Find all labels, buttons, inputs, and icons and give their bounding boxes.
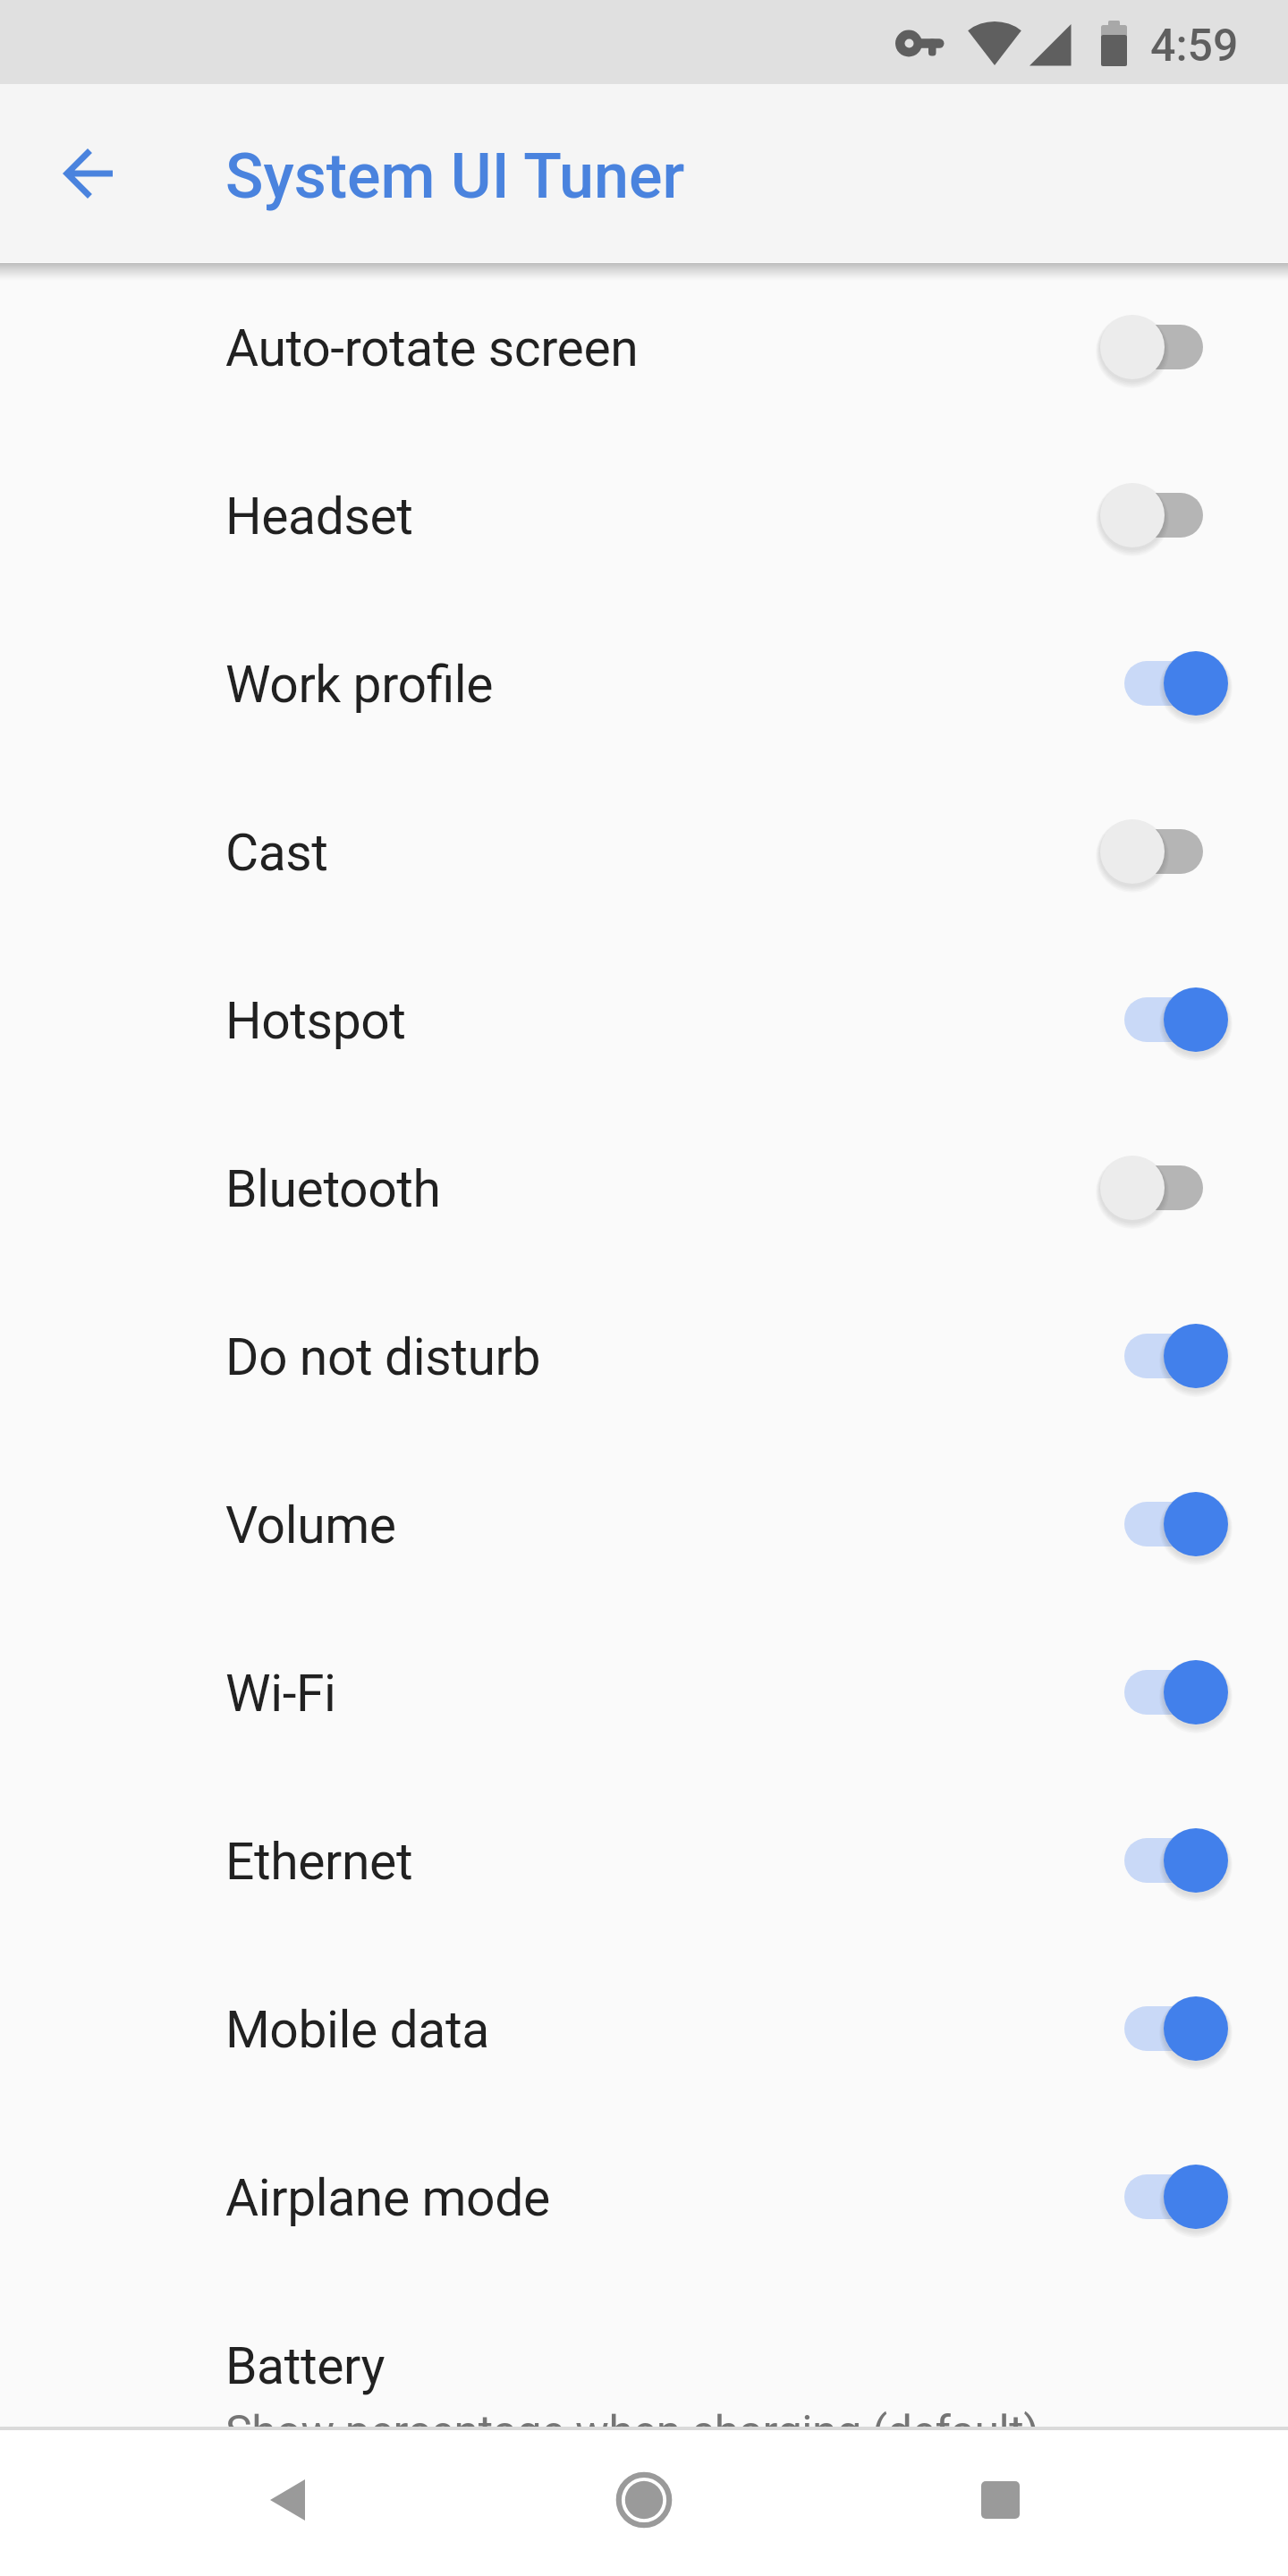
staticText: Ethernet <box>225 1832 413 1892</box>
button[interactable]: Toggle off <box>1118 265 1288 433</box>
button[interactable]: Toggle off <box>1118 1106 1288 1274</box>
button[interactable]: Toggle on <box>1118 1610 1288 1778</box>
button[interactable]: Battery <box>0 2283 1288 2427</box>
staticText: Volume <box>225 1496 396 1555</box>
button[interactable]: Back <box>50 136 125 211</box>
button[interactable]: Toggle on <box>1118 1778 1288 1946</box>
button[interactable]: Mobile data <box>0 1946 1288 2114</box>
button[interactable]: Toggle off <box>1118 769 1288 937</box>
button[interactable]: Airplane mode <box>0 2114 1288 2283</box>
button[interactable]: Toggle off <box>1118 433 1288 601</box>
button[interactable]: Hotspot <box>0 937 1288 1106</box>
button[interactable]: Volume <box>0 1442 1288 1610</box>
button[interactable]: Toggle on <box>1118 1442 1288 1610</box>
button[interactable]: Wi-Fi <box>0 1610 1288 1778</box>
button[interactable]: Back <box>234 2446 342 2554</box>
button[interactable]: Do not disturb <box>0 1274 1288 1442</box>
button[interactable]: Toggle on <box>1118 1274 1288 1442</box>
staticText: Wi-Fi <box>225 1664 336 1724</box>
staticText: Show percentage when charging (default) <box>225 2406 1039 2427</box>
staticText: Battery <box>225 2336 386 2396</box>
button[interactable]: Toggle on <box>1118 2114 1288 2283</box>
staticText: Headset <box>225 487 413 547</box>
button[interactable]: Recent apps <box>946 2446 1054 2554</box>
button[interactable]: Work profile <box>0 601 1288 769</box>
staticText: Mobile data <box>225 2000 489 2060</box>
staticText: Do not disturb <box>225 1327 541 1387</box>
button[interactable]: Bluetooth <box>0 1106 1288 1274</box>
staticText: Auto-rotate screen <box>225 318 639 378</box>
button[interactable]: Ethernet <box>0 1778 1288 1946</box>
button[interactable]: Cast <box>0 769 1288 937</box>
button[interactable]: Toggle on <box>1118 1946 1288 2114</box>
staticText: Bluetooth <box>225 1159 441 1219</box>
staticText: Airplane mode <box>225 2168 550 2228</box>
button[interactable]: Auto-rotate screen <box>0 265 1288 433</box>
button[interactable]: Toggle on <box>1118 937 1288 1106</box>
button[interactable]: Headset <box>0 433 1288 601</box>
staticText: System UI Tuner <box>225 140 685 213</box>
staticText: 4:59 <box>1150 20 1239 72</box>
staticText: Work profile <box>225 655 494 715</box>
button[interactable]: Toggle on <box>1118 601 1288 769</box>
button[interactable]: Home <box>590 2446 698 2554</box>
staticText: Hotspot <box>225 991 406 1051</box>
staticText: Cast <box>225 823 328 883</box>
